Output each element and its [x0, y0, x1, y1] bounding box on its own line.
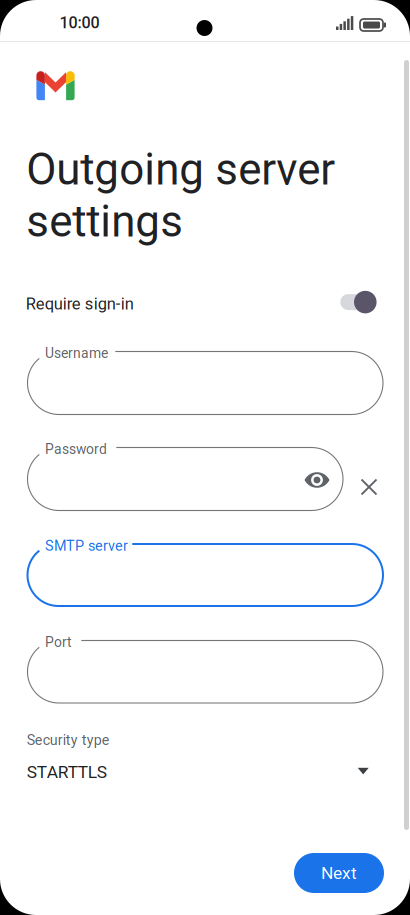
button[interactable]: Next — [0, 0, 90, 40]
staticText: Password — [45, 441, 107, 457]
staticText: Username — [45, 345, 108, 361]
button[interactable]: Require sign-in — [0, 0, 355, 34]
staticText: SMTP server — [45, 537, 128, 554]
staticText: Security type — [27, 732, 110, 748]
button[interactable]: Security type — [0, 0, 355, 56]
staticText: settings — [26, 196, 183, 247]
staticText: Next — [321, 863, 357, 883]
button[interactable]: Show password — [0, 0, 34, 26]
staticText: 10:00 — [59, 13, 99, 32]
staticText: Require sign-in — [26, 294, 134, 313]
staticText: Port — [45, 634, 72, 650]
staticText: STARTTLS — [27, 762, 107, 782]
button[interactable]: Remove — [0, 0, 26, 26]
staticText: Outgoing server — [26, 144, 335, 195]
